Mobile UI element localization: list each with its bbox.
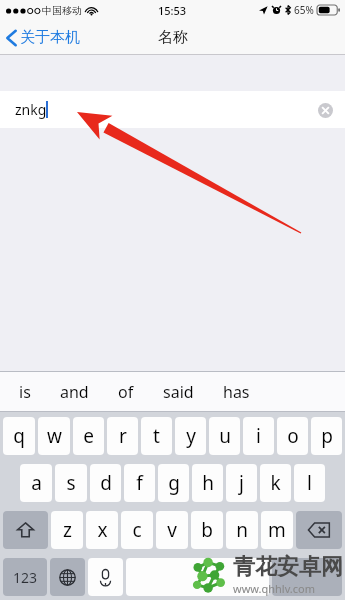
staticText: p bbox=[321, 423, 333, 449]
button[interactable]: h bbox=[192, 464, 223, 502]
button[interactable]: Shift bbox=[3, 511, 48, 549]
staticText: www.qhhlv.com bbox=[233, 581, 315, 596]
staticText: j bbox=[239, 470, 244, 496]
button[interactable]: 123 bbox=[3, 558, 47, 596]
button[interactable]: 关于本机 bbox=[6, 28, 80, 47]
staticText: l bbox=[307, 470, 312, 496]
staticText: i bbox=[256, 423, 261, 449]
button[interactable]: z bbox=[51, 511, 83, 549]
staticText: 青花安卓网 bbox=[233, 553, 343, 581]
button[interactable]: m bbox=[261, 511, 293, 549]
staticText: g bbox=[168, 470, 180, 496]
staticText: t bbox=[153, 423, 160, 449]
staticText: is bbox=[19, 381, 31, 403]
staticText: 65% bbox=[294, 3, 314, 17]
staticText: k bbox=[270, 470, 281, 496]
staticText: e bbox=[83, 423, 94, 449]
button[interactable]: q bbox=[3, 417, 35, 455]
button[interactable]: l bbox=[294, 464, 325, 502]
button[interactable]: a bbox=[20, 464, 52, 502]
button[interactable]: i bbox=[243, 417, 274, 455]
staticText: of bbox=[118, 381, 134, 403]
button[interactable]: Change keyboard language bbox=[50, 558, 85, 596]
button[interactable]: of bbox=[109, 376, 143, 408]
staticText: f bbox=[136, 470, 143, 496]
staticText: a bbox=[31, 470, 42, 496]
button[interactable]: said bbox=[154, 376, 203, 408]
staticText: and bbox=[60, 381, 89, 403]
staticText: znkg bbox=[15, 100, 47, 119]
staticText: r bbox=[119, 423, 127, 449]
button[interactable] bbox=[272, 558, 342, 596]
button[interactable]: Dictation bbox=[88, 558, 123, 596]
staticText: h bbox=[202, 470, 214, 496]
button[interactable]: p bbox=[311, 417, 342, 455]
staticText: w bbox=[47, 423, 62, 449]
button[interactable]: u bbox=[209, 417, 240, 455]
staticText: v bbox=[167, 517, 177, 543]
button[interactable]: y bbox=[175, 417, 206, 455]
staticText: said bbox=[163, 381, 194, 403]
staticText: has bbox=[223, 381, 250, 403]
button[interactable]: has bbox=[214, 376, 259, 408]
staticText: o bbox=[287, 423, 299, 449]
button[interactable]: o bbox=[277, 417, 308, 455]
button[interactable]: g bbox=[158, 464, 189, 502]
button[interactable]: b bbox=[191, 511, 223, 549]
button[interactable] bbox=[126, 558, 269, 596]
button[interactable]: t bbox=[141, 417, 172, 455]
button[interactable]: Backspace bbox=[296, 511, 342, 549]
button[interactable]: Clear text bbox=[314, 99, 336, 121]
button[interactable]: s bbox=[55, 464, 87, 502]
staticText: z bbox=[63, 517, 72, 543]
staticText: 123 bbox=[13, 568, 38, 587]
button[interactable]: n bbox=[226, 511, 258, 549]
staticText: u bbox=[219, 423, 231, 449]
button[interactable]: c bbox=[121, 511, 153, 549]
staticText: d bbox=[100, 470, 112, 496]
button[interactable]: and bbox=[51, 376, 98, 408]
staticText: 名称 bbox=[158, 28, 188, 47]
staticText: y bbox=[186, 423, 196, 449]
button[interactable]: j bbox=[226, 464, 257, 502]
staticText: m bbox=[268, 517, 286, 543]
button[interactable]: f bbox=[124, 464, 155, 502]
staticText: c bbox=[132, 517, 142, 543]
button[interactable]: w bbox=[38, 417, 70, 455]
staticText: x bbox=[97, 517, 108, 543]
button[interactable]: e bbox=[73, 417, 104, 455]
staticText: 中国移动 bbox=[42, 4, 82, 17]
staticText: 15:53 bbox=[158, 3, 187, 18]
staticText: q bbox=[13, 423, 25, 449]
button[interactable]: k bbox=[260, 464, 291, 502]
button[interactable]: is bbox=[10, 376, 40, 408]
button[interactable]: x bbox=[86, 511, 118, 549]
staticText: s bbox=[66, 470, 76, 496]
button[interactable]: v bbox=[156, 511, 188, 549]
staticText: b bbox=[201, 517, 213, 543]
staticText: n bbox=[236, 517, 248, 543]
staticText: 关于本机 bbox=[20, 28, 80, 47]
button[interactable]: r bbox=[107, 417, 138, 455]
button[interactable]: znkg bbox=[0, 91, 345, 128]
button[interactable]: d bbox=[90, 464, 121, 502]
